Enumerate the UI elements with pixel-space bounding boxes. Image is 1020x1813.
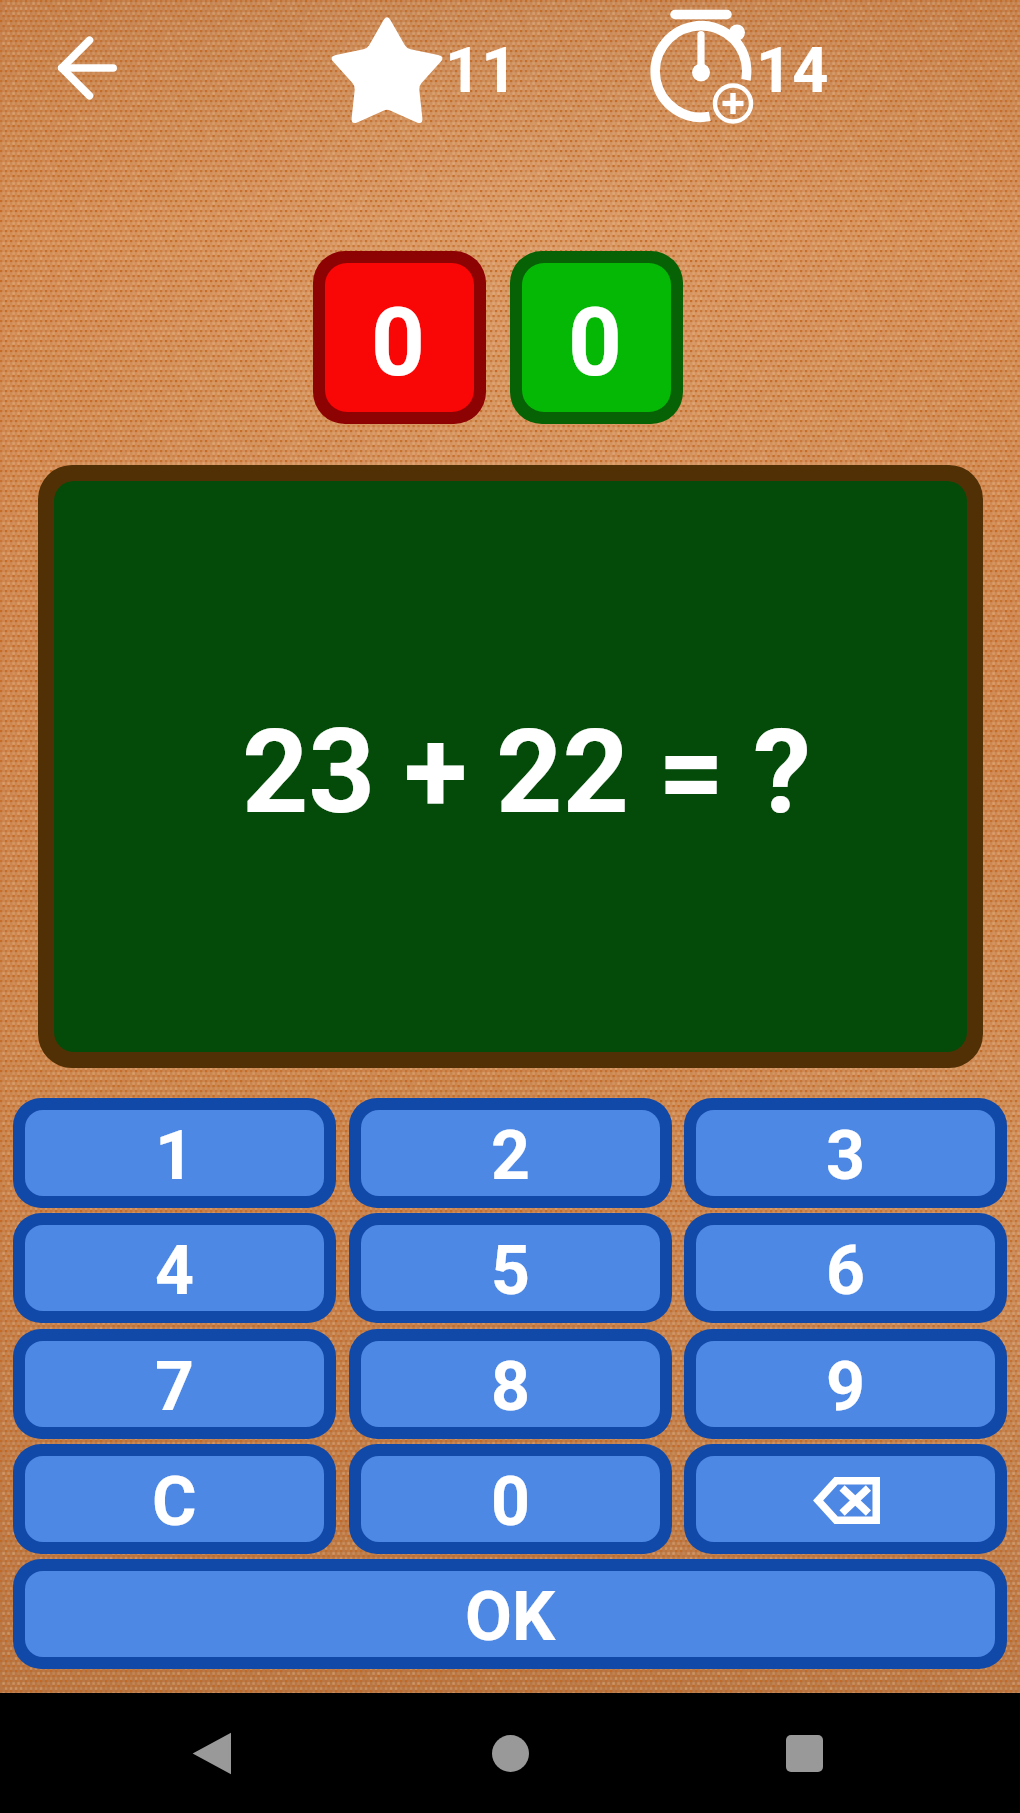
button[interactable]: 0: [325, 263, 474, 412]
button[interactable]: Backspace: [696, 1456, 995, 1542]
button[interactable]: 8: [361, 1341, 660, 1427]
button[interactable]: OK: [25, 1571, 995, 1657]
button[interactable]: Add time: [644, 0, 844, 135]
staticText: 3: [826, 1116, 866, 1196]
button[interactable]: 0: [522, 263, 671, 412]
button[interactable]: Recent apps: [744, 1693, 864, 1813]
staticText: OK: [465, 1577, 556, 1657]
button[interactable]: 7: [25, 1341, 324, 1427]
staticText: 7: [155, 1347, 195, 1427]
staticText: 8: [491, 1347, 531, 1427]
staticText: 23 + 22 = ?: [242, 704, 812, 840]
button[interactable]: 0: [361, 1456, 660, 1542]
staticText: 0: [491, 1462, 531, 1542]
staticText: 2: [491, 1116, 531, 1196]
staticText: C: [152, 1462, 197, 1542]
button[interactable]: Home: [450, 1693, 570, 1813]
staticText: 5: [491, 1231, 531, 1311]
staticText: 1: [155, 1116, 195, 1196]
button[interactable]: 9: [696, 1341, 995, 1427]
button[interactable]: 11: [316, 0, 516, 145]
button[interactable]: 5: [361, 1225, 660, 1311]
staticText: 6: [826, 1231, 866, 1311]
staticText: 9: [826, 1347, 866, 1427]
staticText: 0: [568, 288, 622, 398]
other: Backspace: [814, 1477, 880, 1524]
staticText: 4: [155, 1231, 195, 1311]
button[interactable]: 4: [25, 1225, 324, 1311]
staticText: 14: [756, 34, 829, 108]
button[interactable]: 1: [25, 1110, 324, 1196]
button[interactable]: 2: [361, 1110, 660, 1196]
staticText: 0: [371, 288, 425, 398]
staticText: 11: [445, 34, 518, 108]
button[interactable]: Back: [153, 1693, 273, 1813]
button[interactable]: 3: [696, 1110, 995, 1196]
button[interactable]: Back: [28, 18, 148, 118]
button[interactable]: C: [25, 1456, 324, 1542]
button[interactable]: 6: [696, 1225, 995, 1311]
